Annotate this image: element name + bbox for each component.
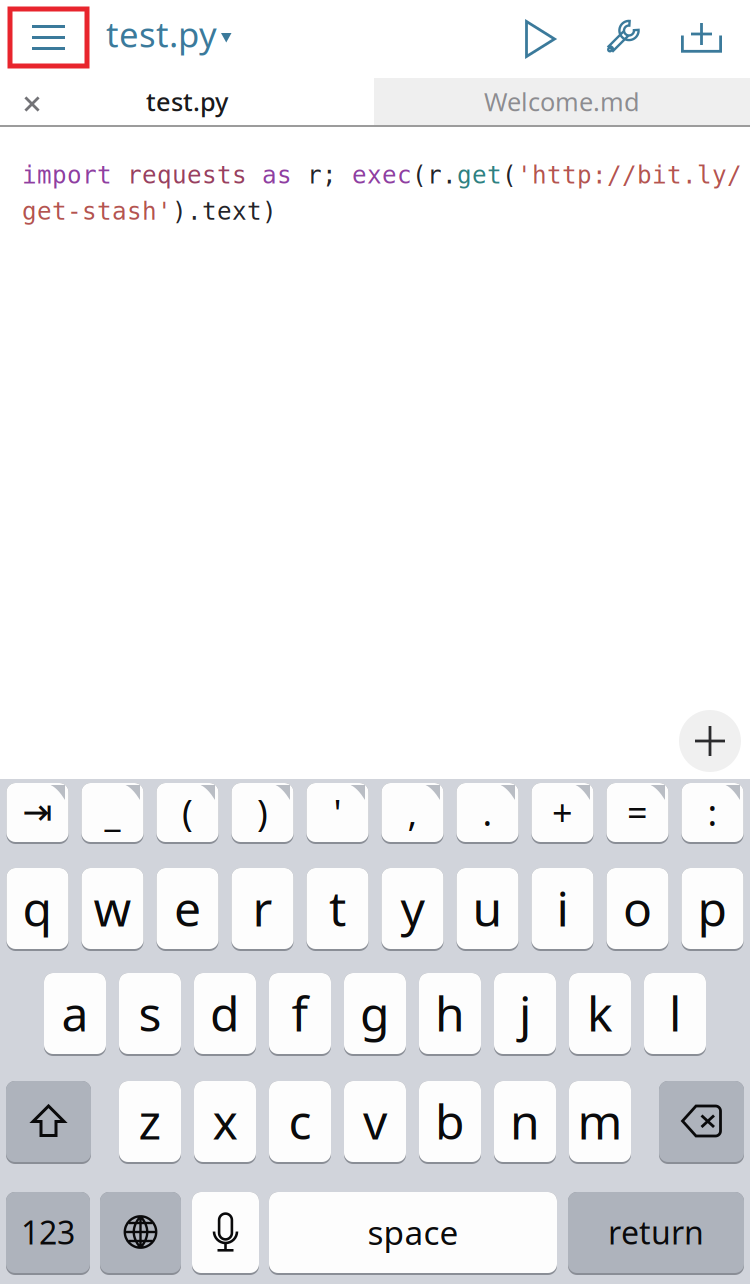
staticText: i	[556, 876, 568, 940]
staticText: e	[174, 876, 201, 940]
staticText: test.py	[106, 11, 217, 57]
button[interactable]: c	[269, 1081, 331, 1164]
button[interactable]: z	[119, 1081, 181, 1164]
staticText: g	[360, 981, 390, 1045]
button[interactable]: b	[419, 1081, 481, 1164]
button[interactable]: k	[569, 973, 631, 1056]
staticText: k	[587, 981, 613, 1045]
staticText: j	[519, 981, 531, 1045]
staticText: r;	[307, 161, 352, 189]
button[interactable]: y	[381, 868, 443, 951]
staticText: u	[472, 876, 502, 940]
staticText: Welcome.md	[484, 85, 640, 118]
staticText: ,	[407, 788, 417, 836]
button[interactable]: :	[681, 783, 743, 844]
button[interactable]: w	[81, 868, 143, 951]
button[interactable]: x	[194, 1081, 256, 1164]
button[interactable]: Menu	[10, 9, 87, 66]
button[interactable]: Next keyboard	[100, 1192, 181, 1275]
button[interactable]: Welcome.md	[374, 78, 750, 125]
staticText: (	[182, 788, 193, 836]
staticText: q	[22, 876, 52, 940]
button[interactable]: q	[6, 868, 68, 951]
button[interactable]: f	[269, 973, 331, 1056]
button[interactable]: m	[569, 1081, 631, 1164]
button[interactable]: u	[456, 868, 518, 951]
button[interactable]: s	[119, 973, 181, 1056]
button[interactable]: Dictate	[192, 1192, 259, 1275]
button[interactable]: Delete	[659, 1081, 744, 1164]
staticText: a	[61, 981, 88, 1045]
staticText: b	[435, 1089, 465, 1153]
button[interactable]: g	[344, 973, 406, 1056]
button[interactable]: 123	[6, 1192, 90, 1275]
staticText: y	[400, 876, 424, 940]
staticText: )	[257, 788, 268, 836]
staticText: o	[623, 876, 652, 940]
staticText: space	[367, 1210, 458, 1254]
staticText: n	[510, 1089, 540, 1153]
staticText: m	[577, 1089, 622, 1153]
button[interactable]: d	[194, 973, 256, 1056]
staticText: 123	[21, 1211, 75, 1253]
staticText: v	[363, 1089, 387, 1153]
button[interactable]: )	[231, 783, 293, 844]
button[interactable]: v	[344, 1081, 406, 1164]
staticText: get-stash'	[22, 197, 172, 225]
button[interactable]: space	[269, 1192, 557, 1275]
staticText: _	[104, 788, 120, 836]
button[interactable]: Shift	[6, 1081, 91, 1164]
button[interactable]: test.py	[106, 13, 256, 55]
staticText: :	[707, 788, 717, 836]
button[interactable]: a	[44, 973, 106, 1056]
button[interactable]: ,	[381, 783, 443, 844]
button[interactable]: +	[531, 783, 593, 844]
staticText: ⇥	[22, 792, 52, 832]
button[interactable]: i	[531, 868, 593, 951]
button[interactable]: h	[419, 973, 481, 1056]
staticText: f	[291, 981, 308, 1045]
staticText: 'http://bit.ly/	[517, 161, 742, 189]
staticText: w	[93, 876, 131, 940]
button[interactable]: e	[156, 868, 218, 951]
button[interactable]: n	[494, 1081, 556, 1164]
staticText: +	[552, 788, 573, 836]
button[interactable]: ⇥	[6, 783, 68, 844]
staticText: (r.	[412, 161, 457, 189]
staticText: ).text)	[172, 197, 277, 225]
button[interactable]: o	[606, 868, 668, 951]
button[interactable]: Run	[525, 20, 556, 58]
button[interactable]: (	[156, 783, 218, 844]
button[interactable]: t	[306, 868, 368, 951]
staticText: s	[138, 981, 161, 1045]
staticText: d	[210, 981, 240, 1045]
button[interactable]: r	[231, 868, 293, 951]
button[interactable]: Close tab	[24, 96, 40, 112]
staticText: (	[502, 161, 517, 189]
button[interactable]: '	[306, 783, 368, 844]
button[interactable]: =	[606, 783, 668, 844]
button[interactable]: Tools	[602, 19, 641, 57]
staticText: return	[608, 1211, 704, 1253]
button[interactable]: New file	[681, 23, 722, 53]
staticText: x	[212, 1089, 237, 1153]
button[interactable]: .	[456, 783, 518, 844]
staticText: t	[329, 876, 346, 940]
button[interactable]: test.py	[0, 78, 374, 125]
button[interactable]: Insert snippet	[679, 710, 741, 772]
button[interactable]: j	[494, 973, 556, 1056]
staticText: as	[262, 161, 292, 189]
staticText: import	[22, 161, 112, 189]
staticText: h	[435, 981, 465, 1045]
button[interactable]: return	[568, 1192, 744, 1275]
staticText: z	[138, 1089, 161, 1153]
button[interactable]: l	[644, 973, 706, 1056]
staticText: get	[457, 161, 502, 189]
button[interactable]: p	[681, 868, 743, 951]
staticText: exec	[352, 161, 412, 189]
button[interactable]: _	[81, 783, 143, 844]
staticText: requests	[127, 161, 247, 189]
